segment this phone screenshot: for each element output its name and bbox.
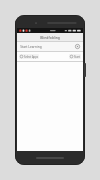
staticText: Start Learning bbox=[20, 45, 42, 49]
other: Settings bbox=[75, 44, 80, 49]
other: Power button bbox=[84, 63, 86, 77]
staticText: Select Apps bbox=[24, 55, 38, 59]
button[interactable]: Start Learning bbox=[17, 42, 83, 51]
staticText: Start bbox=[74, 55, 80, 59]
button[interactable]: Start bbox=[69, 54, 81, 59]
button[interactable]: Blindfolding bbox=[17, 33, 83, 41]
button[interactable]: Select Apps bbox=[19, 54, 39, 59]
staticText: Blindfolding bbox=[40, 35, 60, 40]
